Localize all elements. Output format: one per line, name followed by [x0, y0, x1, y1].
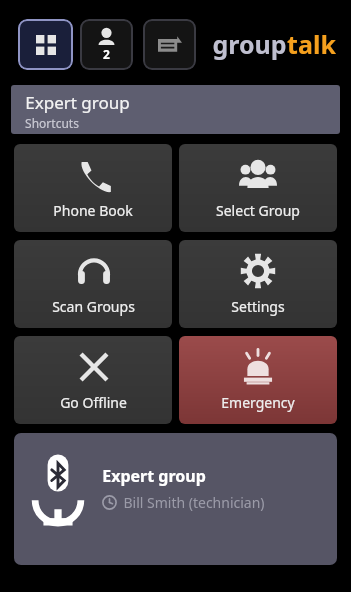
staticText: Scan Groups [52, 297, 135, 316]
button[interactable]: Expert group [14, 433, 337, 565]
button[interactable]: Messages [143, 19, 196, 70]
button[interactable]: Go Offline [14, 336, 172, 424]
staticText: Expert group [25, 91, 130, 114]
staticText: Go Offline [60, 393, 127, 412]
button[interactable]: Phone Book [14, 144, 172, 232]
staticText: Expert group [102, 465, 206, 487]
staticText: Bill Smith (technician) [123, 493, 265, 512]
staticText: talk [287, 27, 336, 61]
button[interactable]: Select Group [179, 144, 337, 232]
button[interactable]: Scan Groups [14, 240, 172, 328]
button[interactable]: Settings [179, 240, 337, 328]
button[interactable]: Emergency [179, 336, 337, 424]
staticText: Settings [231, 297, 285, 316]
button[interactable]: Expert group [11, 85, 340, 134]
staticText: Phone Book [53, 201, 133, 220]
button[interactable]: Shortcuts [18, 19, 73, 70]
staticText: Select Group [216, 201, 300, 220]
staticText: Emergency [221, 393, 295, 412]
staticText: Shortcuts [25, 115, 79, 131]
staticText: 2 [103, 46, 110, 62]
staticText: group [212, 27, 287, 61]
button[interactable]: Contacts [80, 19, 133, 70]
